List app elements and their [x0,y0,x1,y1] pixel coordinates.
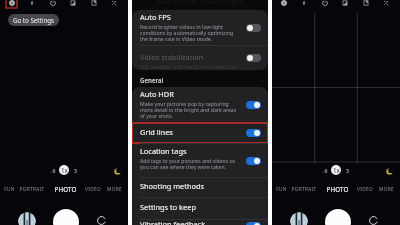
button[interactable]: 1x [331,165,341,175]
button[interactable]: Vibration feedback [132,220,268,225]
staticText: Location tags [140,146,187,156]
staticText: MORE [107,186,122,193]
button[interactable]: Switch camera [368,215,379,225]
button[interactable]: FUN [264,183,298,195]
staticText: PORTRAIT [291,186,317,193]
button[interactable]: Aspect ratio [339,0,350,8]
staticText: VIDEO [357,186,373,193]
button[interactable]: Gallery [290,212,308,225]
button[interactable]: .6 [49,166,58,175]
button[interactable]: Auto HDR [132,87,268,122]
button[interactable]: Timer [47,0,58,8]
staticText: .6 [323,167,328,174]
button[interactable]: Switch camera [96,215,107,225]
button[interactable]: Auto FPS [132,10,268,45]
button[interactable]: Toggle [246,129,261,137]
button[interactable]: Effects [380,0,391,8]
button[interactable]: 3 [343,166,352,175]
staticText: Auto HDR [140,89,174,99]
staticText: PHOTO [326,185,349,193]
button[interactable]: Grid lines [132,123,268,143]
staticText: Add tags to your pictures and videos so … [140,157,242,171]
staticText: Record brighter videos in low-light cond… [140,23,242,43]
button[interactable]: 1x [59,165,69,175]
staticText: 1x [61,166,68,174]
staticText: VIDEO [85,186,101,193]
button[interactable]: Effects [108,0,119,8]
staticText: Not available with the current video siz… [140,63,237,70]
staticText: FUN [276,186,287,193]
button[interactable]: Night mode [385,167,394,176]
button[interactable]: Toggle [246,24,261,32]
button[interactable]: Toggle [246,101,261,109]
button[interactable]: VIDEO [76,183,110,195]
button[interactable]: Aspect ratio [67,0,78,8]
button[interactable]: Settings [278,0,289,8]
staticText: FUN [4,186,15,193]
staticText: General [140,76,164,84]
staticText: Video stabilization [140,52,204,62]
button[interactable]: Resolution [360,0,371,8]
button[interactable]: Night mode [113,167,122,176]
button[interactable]: Take photo [325,209,351,225]
button[interactable]: Flash [298,0,309,8]
button[interactable]: Toggle [246,54,261,62]
button[interactable]: PORTRAIT [287,183,321,195]
button[interactable]: Timer [319,0,330,8]
button[interactable]: Settings [6,0,17,8]
staticText: .6 [51,167,56,174]
staticText: Auto FPS [140,12,171,22]
staticText: PHOTO [54,185,77,193]
staticText: MORE [379,186,394,193]
staticText: PORTRAIT [19,186,45,193]
button[interactable]: .6 [321,166,330,175]
button[interactable]: Resolution [88,0,99,8]
button[interactable]: Toggle [246,157,261,165]
button[interactable]: PHOTO [48,183,82,195]
button[interactable]: Toggle [246,222,261,225]
staticText: Grid lines [140,127,173,137]
button[interactable]: Location tags [132,144,268,177]
staticText: 3 [346,167,349,174]
button[interactable]: Video stabilization [132,46,268,70]
button[interactable]: Go to Settings [8,14,59,26]
button[interactable]: MORE [369,183,400,195]
staticText: 1x [333,166,340,174]
button[interactable]: PORTRAIT [15,183,49,195]
staticText: Settings to keep [140,202,196,212]
staticText: Make your pictures pop by capturing more… [140,100,242,120]
button[interactable]: Settings to keep [132,198,268,219]
staticText: Camera settings [157,0,243,6]
button[interactable]: FUN [0,183,26,195]
button[interactable]: Flash [26,0,37,8]
button[interactable]: MORE [97,183,131,195]
staticText: Vibration feedback [140,219,206,225]
button[interactable]: Gallery [18,212,36,225]
button[interactable]: 3 [71,166,80,175]
staticText: Shooting methods [140,181,205,191]
button[interactable]: VIDEO [348,183,382,195]
staticText: 3 [74,167,77,174]
staticText: Go to Settings [13,16,54,24]
button[interactable]: PHOTO [320,183,354,195]
button[interactable]: Take photo [53,209,79,225]
button[interactable]: Shooting methods [132,178,268,197]
